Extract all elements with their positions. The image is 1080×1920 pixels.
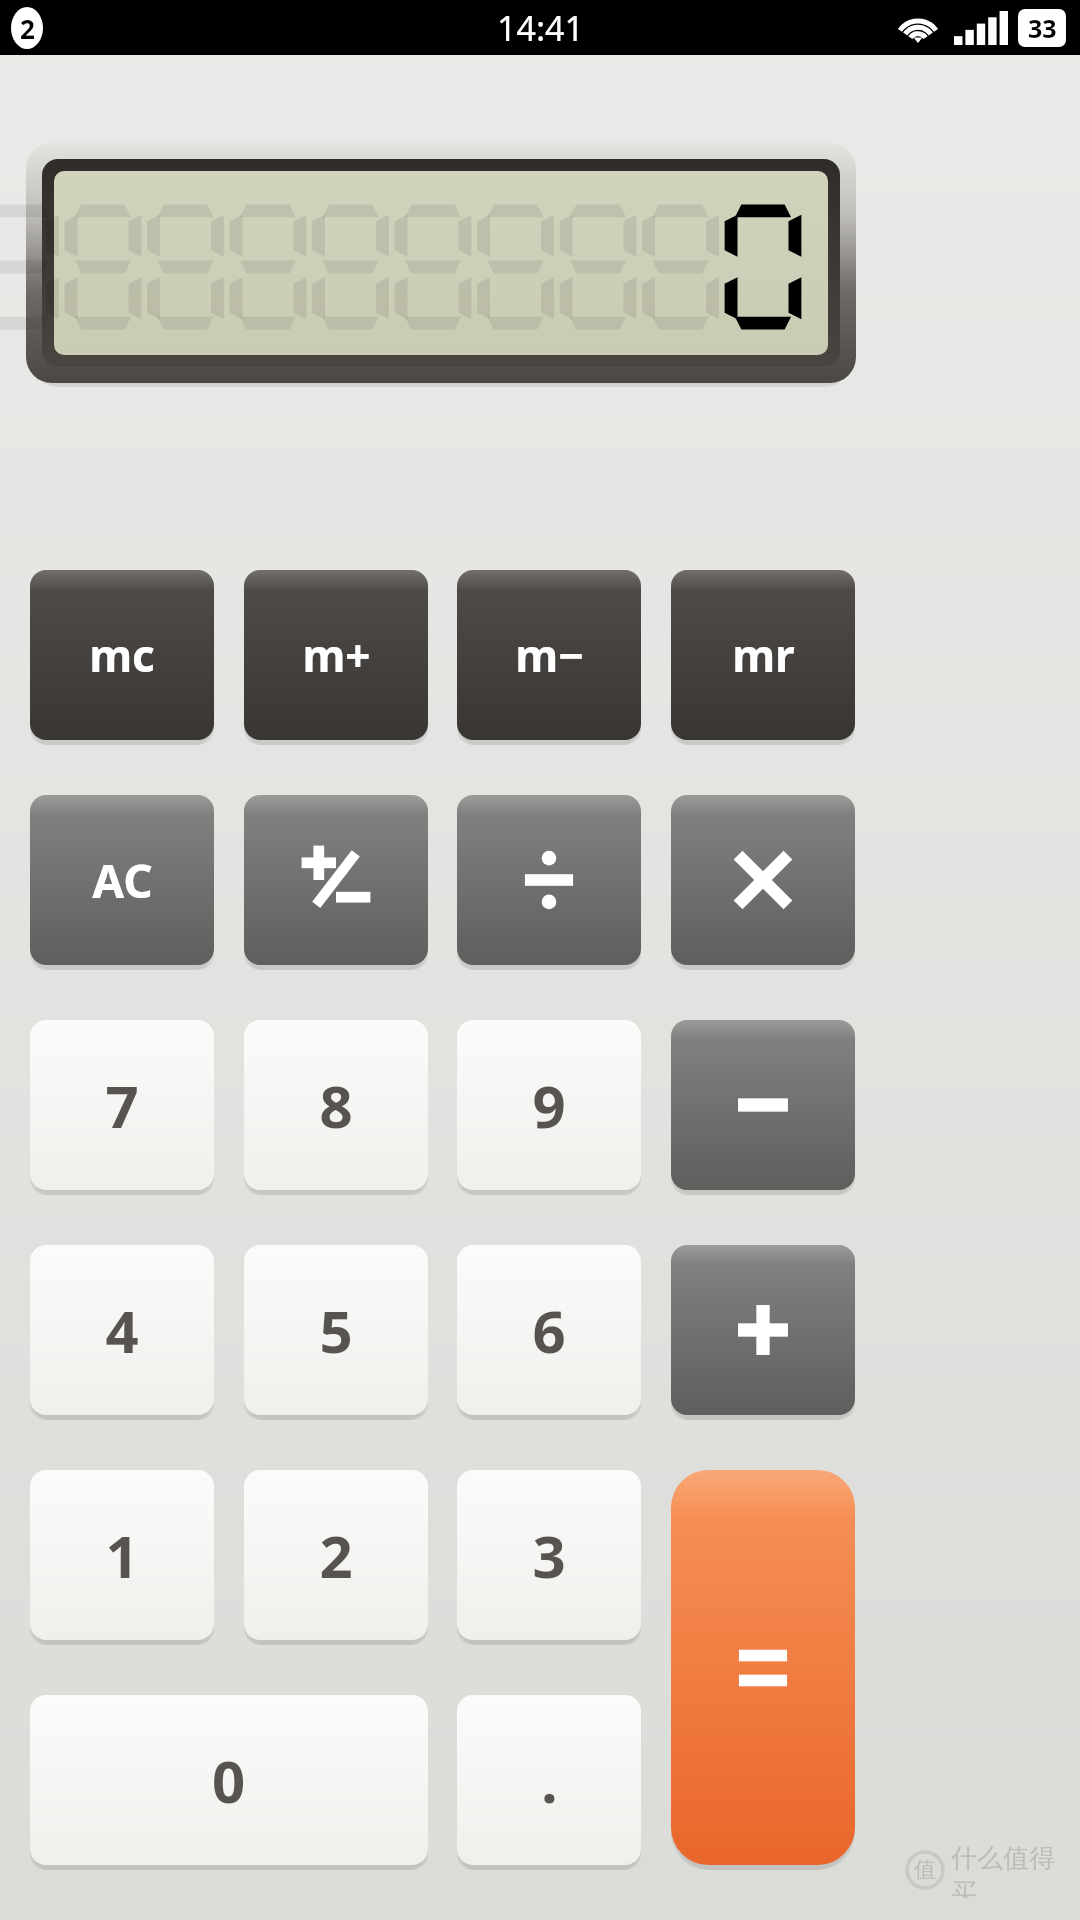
- button[interactable]: 4: [30, 1245, 214, 1415]
- button[interactable]: AC: [30, 795, 214, 965]
- staticText: mr: [732, 625, 795, 685]
- button[interactable]: Divide: [457, 795, 641, 965]
- staticText: 33: [1028, 11, 1057, 45]
- staticText: 7: [105, 1066, 139, 1145]
- button[interactable]: Plus minus: [244, 795, 428, 965]
- staticText: 9: [532, 1066, 566, 1145]
- staticText: m−: [515, 625, 584, 685]
- staticText: 什么值得买: [951, 1842, 1065, 1898]
- button[interactable]: Plus: [671, 1245, 855, 1415]
- staticText: 2: [319, 1516, 353, 1595]
- button[interactable]: m−: [457, 570, 641, 740]
- button[interactable]: 7: [30, 1020, 214, 1190]
- button[interactable]: 9: [457, 1020, 641, 1190]
- staticText: AC: [92, 849, 153, 912]
- button[interactable]: 2: [244, 1470, 428, 1640]
- staticText: 8: [319, 1066, 353, 1145]
- staticText: 1: [105, 1516, 139, 1595]
- staticText: m+: [302, 625, 371, 685]
- button[interactable]: mr: [671, 570, 855, 740]
- button[interactable]: 0: [30, 1695, 428, 1865]
- staticText: 2: [20, 11, 35, 46]
- staticText: 5: [319, 1291, 353, 1370]
- staticText: 3: [532, 1516, 566, 1595]
- staticText: mc: [89, 625, 155, 685]
- staticText: 6: [532, 1291, 566, 1370]
- button[interactable]: 3: [457, 1470, 641, 1640]
- button[interactable]: mc: [30, 570, 214, 740]
- button[interactable]: Minus: [671, 1020, 855, 1190]
- button[interactable]: Multiply: [671, 795, 855, 965]
- button[interactable]: 1: [30, 1470, 214, 1640]
- staticText: 0: [212, 1741, 246, 1820]
- button[interactable]: 8: [244, 1020, 428, 1190]
- button[interactable]: .: [457, 1695, 641, 1865]
- staticText: 14:41: [497, 5, 584, 51]
- button[interactable]: 5: [244, 1245, 428, 1415]
- button[interactable]: m+: [244, 570, 428, 740]
- button[interactable]: [671, 1470, 855, 1865]
- button[interactable]: 6: [457, 1245, 641, 1415]
- staticText: .: [541, 1741, 558, 1820]
- staticText: 值: [914, 1856, 936, 1884]
- staticText: 4: [105, 1291, 139, 1370]
